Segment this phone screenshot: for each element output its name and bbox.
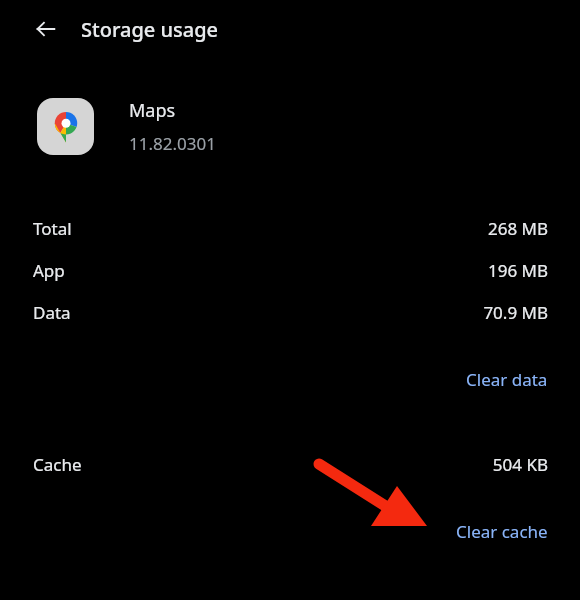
button[interactable]: Cache [0,453,580,476]
staticText: Total [33,217,72,240]
button[interactable]: Data [0,282,580,324]
staticText: Clear data [466,368,548,391]
staticText: Maps [129,98,176,123]
staticText: 196 MB [487,259,548,282]
staticText: Cache [33,453,82,476]
staticText: Storage usage [81,16,219,43]
button[interactable]: Maps [0,98,580,155]
staticText: Clear cache [456,520,548,543]
staticText: App [33,259,65,282]
button[interactable]: Back [25,8,67,50]
button[interactable]: App [0,240,580,282]
staticText: Data [33,301,71,324]
staticText: 11.82.0301 [129,132,216,155]
staticText: 504 KB [492,453,548,476]
staticText: 268 MB [487,217,548,240]
staticText: 70.9 MB [483,301,548,324]
button[interactable]: Total [0,217,580,240]
button[interactable]: Clear data [450,362,580,397]
button[interactable]: Clear cache [440,514,580,549]
